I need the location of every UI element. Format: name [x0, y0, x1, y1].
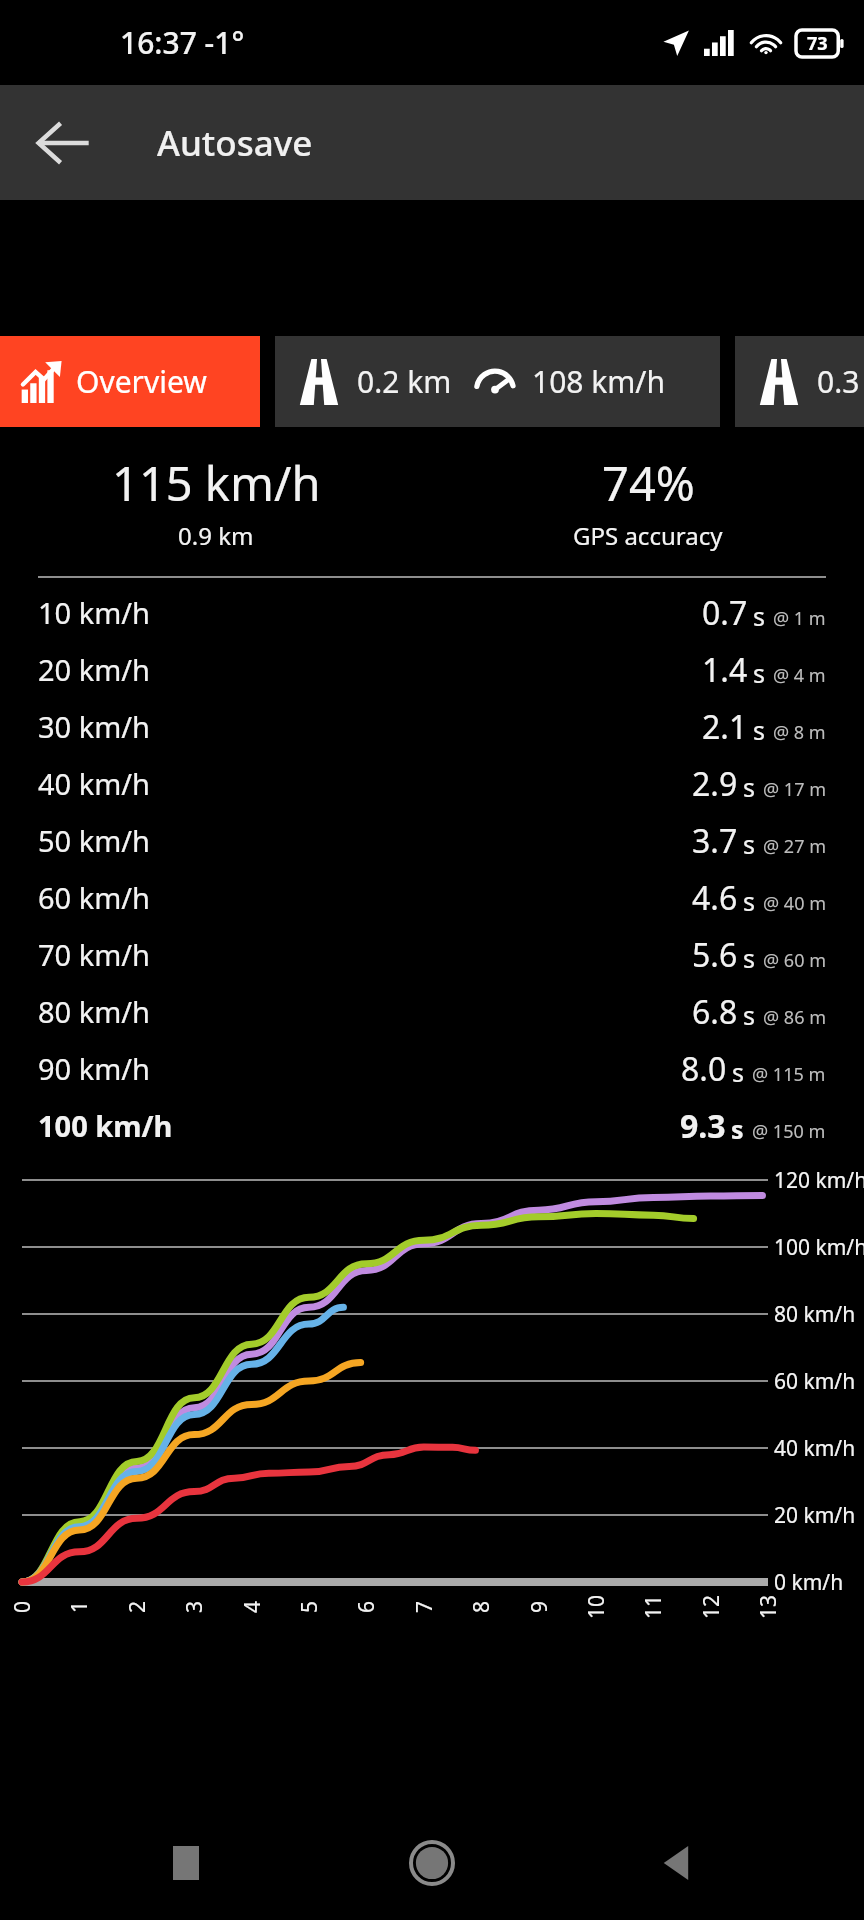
staticText: s — [743, 941, 755, 975]
staticText: 13 — [754, 1594, 783, 1619]
staticText: @ 150 m — [752, 1119, 826, 1144]
staticText: 3.7 — [692, 819, 738, 863]
staticText: 100 km/h — [774, 1233, 864, 1262]
staticText: 40 km/h — [774, 1434, 856, 1463]
button[interactable]: 80 km/h — [38, 983, 826, 1040]
staticText: @ 115 m — [752, 1062, 826, 1087]
staticText: s — [743, 884, 755, 918]
staticText: @ 4 m — [773, 663, 826, 688]
button[interactable]: Home — [396, 1827, 468, 1899]
button[interactable]: 70 km/h — [38, 926, 826, 983]
button[interactable]: 20 km/h — [38, 641, 826, 698]
button[interactable]: 0.3 — [735, 336, 864, 427]
staticText: @ 1 m — [773, 606, 826, 631]
staticText: 5 — [295, 1600, 324, 1613]
staticText: 11 — [639, 1594, 668, 1619]
staticText: 115 km/h — [112, 451, 321, 515]
staticText: 20 km/h — [38, 650, 151, 689]
staticText: 0.3 — [817, 361, 860, 402]
staticText: 60 km/h — [38, 878, 151, 917]
button[interactable]: 90 km/h — [38, 1040, 826, 1097]
staticText: 8.0 — [681, 1047, 727, 1091]
staticText: 90 km/h — [38, 1049, 151, 1088]
staticText: 1 — [65, 1600, 94, 1613]
staticText: 16:37 -1° — [120, 22, 245, 63]
staticText: 4 — [238, 1600, 267, 1613]
staticText: 0.9 km — [178, 519, 254, 552]
staticText: 0 — [8, 1600, 37, 1613]
staticText: 80 km/h — [774, 1300, 856, 1329]
staticText: s — [743, 770, 755, 804]
staticText: 5.6 — [692, 933, 738, 977]
staticText: 74% — [602, 451, 695, 515]
staticText: 20 km/h — [774, 1501, 856, 1530]
staticText: 2.9 — [692, 762, 738, 806]
staticText: s — [743, 827, 755, 861]
button[interactable]: Recent apps — [150, 1827, 222, 1899]
button[interactable]: 30 km/h — [38, 698, 826, 755]
staticText: @ 60 m — [763, 948, 826, 973]
staticText: s — [753, 656, 765, 690]
staticText: s — [732, 1055, 744, 1089]
staticText: 2.1 — [702, 705, 748, 749]
staticText: 2 — [123, 1600, 152, 1613]
staticText: @ 27 m — [763, 834, 826, 859]
staticText: Autosave — [157, 119, 313, 167]
button[interactable]: 100 km/h — [38, 1097, 826, 1154]
staticText: 73 — [807, 31, 828, 56]
button[interactable]: 60 km/h — [38, 869, 826, 926]
button[interactable]: 40 km/h — [38, 755, 826, 812]
staticText: 0 km/h — [774, 1568, 844, 1597]
staticText: 120 km/h — [774, 1166, 864, 1195]
button[interactable]: 50 km/h — [38, 812, 826, 869]
staticText: @ 86 m — [763, 1005, 826, 1030]
staticText: 0.7 — [702, 591, 748, 635]
staticText: 108 km/h — [532, 361, 666, 402]
staticText: 10 km/h — [38, 593, 151, 632]
staticText: 4.6 — [692, 876, 738, 920]
button[interactable]: Overview — [0, 336, 260, 427]
button[interactable]: 0.2 km — [275, 336, 720, 427]
staticText: 7 — [410, 1600, 439, 1613]
staticText: 6 — [352, 1600, 381, 1613]
staticText: 80 km/h — [38, 992, 151, 1031]
staticText: 6.8 — [692, 990, 738, 1034]
staticText: 40 km/h — [38, 764, 151, 803]
staticText: 70 km/h — [38, 935, 151, 974]
staticText: 10 — [582, 1594, 611, 1619]
staticText: @ 17 m — [763, 777, 826, 802]
staticText: Overview — [76, 361, 207, 402]
staticText: 8 — [467, 1600, 496, 1613]
staticText: 1.4 — [702, 648, 748, 692]
staticText: GPS accuracy — [573, 519, 723, 552]
button[interactable]: Back — [20, 101, 104, 185]
staticText: @ 40 m — [763, 891, 826, 916]
button[interactable]: 10 km/h — [38, 584, 826, 641]
staticText: 0.2 km — [357, 361, 452, 402]
staticText: 100 km/h — [38, 1106, 173, 1145]
staticText: 3 — [180, 1600, 209, 1613]
staticText: s — [743, 998, 755, 1032]
staticText: s — [753, 599, 765, 633]
staticText: 50 km/h — [38, 821, 151, 860]
staticText: 30 km/h — [38, 707, 151, 746]
button[interactable]: Back — [642, 1827, 714, 1899]
staticText: @ 8 m — [773, 720, 826, 745]
staticText: 9 — [525, 1600, 554, 1613]
staticText: s — [731, 1112, 744, 1146]
staticText: 12 — [697, 1594, 726, 1619]
staticText: 9.3 — [680, 1104, 726, 1148]
staticText: s — [753, 713, 765, 747]
staticText: 60 km/h — [774, 1367, 856, 1396]
